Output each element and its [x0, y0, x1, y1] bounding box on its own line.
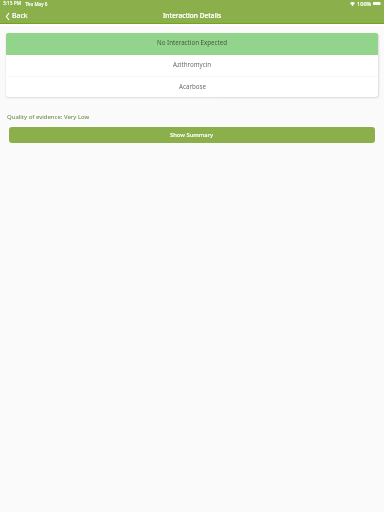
staticText: Interaction Details: [163, 11, 222, 20]
button[interactable]: Acarbose: [6, 77, 378, 97]
button[interactable]: Azithromycin: [6, 55, 378, 76]
staticText: Thu May 6: [25, 1, 48, 7]
other: Wi-Fi connected: [350, 2, 355, 6]
staticText: No Interaction Expected: [157, 38, 228, 46]
button[interactable]: Back: [0, 10, 34, 22]
button[interactable]: Show Summary: [9, 127, 375, 143]
staticText: Quality of evidence: Very Low: [7, 113, 90, 121]
other: Battery full: [373, 2, 381, 5]
staticText: 100%: [357, 0, 372, 7]
staticText: Show Summary: [170, 131, 214, 139]
staticText: Azithromycin: [173, 60, 212, 68]
staticText: Acarbose: [179, 82, 206, 90]
staticText: 3:15 PM: [3, 0, 22, 7]
button[interactable]: No Interaction Expected: [6, 33, 378, 55]
staticText: Back: [12, 11, 28, 21]
